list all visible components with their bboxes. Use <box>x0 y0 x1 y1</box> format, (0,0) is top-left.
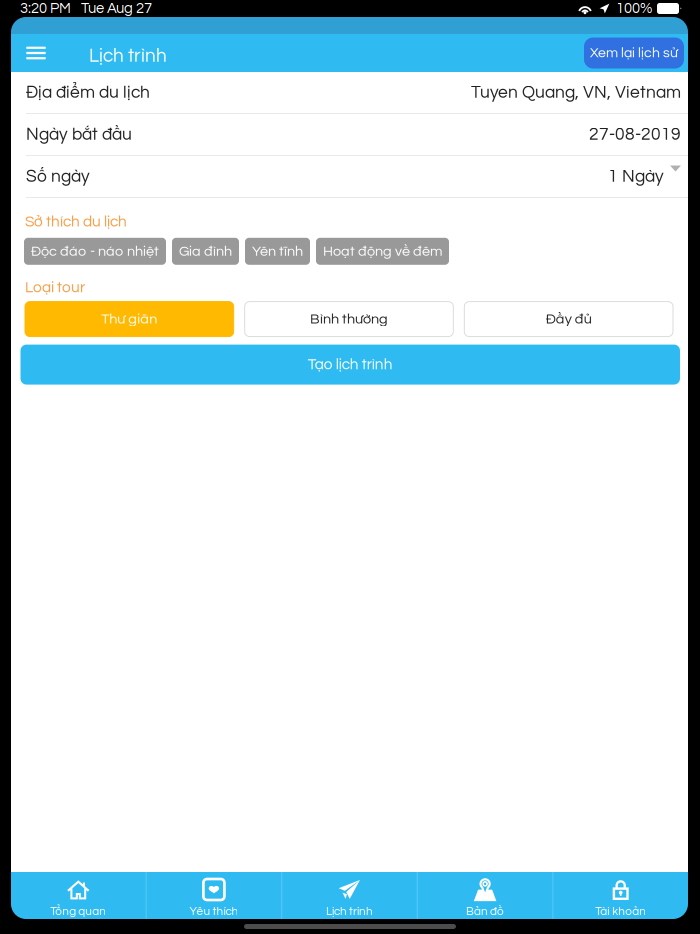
staticText: 1 Ngày <box>608 168 664 185</box>
button[interactable]: Menu <box>18 34 54 72</box>
button[interactable]: Xem lại lịch sử <box>584 37 684 68</box>
staticText: 3:20 PM <box>20 1 71 16</box>
staticText: 100% <box>616 1 652 16</box>
button[interactable]: Tổng quan <box>11 872 146 919</box>
staticText: Bình thường <box>310 312 388 326</box>
staticText: Thư giãn <box>101 312 157 326</box>
staticText: Bản đồ <box>466 905 504 918</box>
button[interactable]: Tạo lịch trình <box>20 345 680 385</box>
staticText: Tạo lịch trình <box>308 357 393 372</box>
staticText: Lịch trình <box>89 46 167 66</box>
staticText: Đầy đủ <box>546 312 592 326</box>
staticText: Ngày bắt đầu <box>26 126 132 143</box>
staticText: Độc đáo - náo nhiệt <box>31 244 159 259</box>
staticText: Hoạt động về đêm <box>323 244 442 259</box>
button[interactable]: Gia đình <box>172 238 239 265</box>
staticText: 27-08-2019 <box>589 126 681 143</box>
staticText: Sở thích du lịch <box>25 214 127 230</box>
staticText: Địa điểm du lịch <box>26 84 150 101</box>
staticText: Tue Aug 27 <box>81 1 152 16</box>
staticText: Lịch trình <box>326 905 373 918</box>
staticText: Tuyen Quang, VN, Vietnam <box>471 84 681 101</box>
button[interactable]: Lịch trình <box>282 872 417 919</box>
staticText: Tài khoản <box>595 905 646 918</box>
button[interactable]: Bản đồ <box>418 872 552 919</box>
button[interactable]: Bình thường <box>245 302 453 337</box>
button[interactable]: Độc đáo - náo nhiệt <box>24 238 166 265</box>
button[interactable]: Thư giãn <box>25 302 234 337</box>
staticText: Xem lại lịch sử <box>590 46 678 60</box>
staticText: Yên tĩnh <box>252 244 303 259</box>
button[interactable]: Đầy đủ <box>464 302 673 337</box>
staticText: Yêu thích <box>189 905 238 918</box>
staticText: Gia đình <box>179 244 232 259</box>
staticText: Tổng quan <box>50 905 106 918</box>
button[interactable]: Yên tĩnh <box>245 238 310 265</box>
button[interactable]: Tài khoản <box>553 872 688 919</box>
staticText: Loại tour <box>25 280 85 296</box>
staticText: Số ngày <box>26 168 90 185</box>
button[interactable]: Yêu thích <box>147 872 281 919</box>
button[interactable]: Hoạt động về đêm <box>316 238 449 265</box>
